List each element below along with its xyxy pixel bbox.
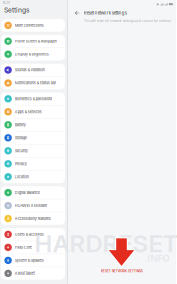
button[interactable]: System & updates	[1, 254, 65, 267]
staticText: .INFO	[144, 253, 169, 264]
staticText: Sounds & vibration	[15, 68, 45, 72]
staticText: HARDRESET	[34, 229, 177, 258]
button[interactable]: Biometrics & password	[1, 92, 65, 105]
staticText: Storage	[15, 135, 27, 140]
button[interactable]: HMS Core	[1, 241, 65, 254]
button[interactable]: Back	[68, 9, 84, 17]
staticText: Accessibility features	[15, 216, 51, 221]
staticText: Security	[15, 148, 28, 153]
staticText: Home screen & wallpaper	[15, 39, 57, 43]
staticText: Digital Balance	[15, 190, 40, 195]
button[interactable]: Home screen & wallpaper	[1, 35, 65, 47]
button[interactable]: More connections	[1, 19, 65, 32]
staticText: HUAWEI Assistant	[15, 203, 47, 208]
staticText: Settings	[4, 6, 30, 14]
staticText: Notifications & status bar	[15, 81, 56, 85]
staticText: Users & accounts	[15, 232, 44, 237]
button[interactable]: Apps & services	[1, 105, 65, 118]
staticText: This will reset all network settings and…	[84, 19, 172, 23]
staticText: About tablet	[15, 271, 35, 276]
staticText: Apps & services	[15, 109, 42, 114]
staticText: Privacy	[15, 161, 27, 166]
staticText: Reset network settings	[84, 10, 127, 16]
button[interactable]: Storage	[1, 131, 65, 144]
button[interactable]: Digital Balance	[1, 186, 65, 199]
button[interactable]: Sounds & vibration	[1, 64, 65, 76]
button[interactable]: RESET NETWORK SETTINGS	[68, 267, 175, 275]
staticText: Location	[15, 174, 29, 179]
button[interactable]: Users & accounts	[1, 228, 65, 241]
button[interactable]: Display & brightness	[1, 48, 65, 60]
staticText: HMS Core	[15, 245, 32, 250]
staticText: RESET NETWORK SETTINGS	[101, 269, 143, 273]
staticText: 10:31	[2, 1, 9, 5]
button[interactable]: HUAWEI Assistant	[1, 199, 65, 212]
staticText: Battery	[15, 122, 26, 127]
staticText: Biometrics & password	[15, 96, 52, 101]
staticText: More connections	[15, 23, 44, 28]
button[interactable]: Privacy	[1, 157, 65, 170]
button[interactable]: Battery	[1, 118, 65, 131]
staticText: System & updates	[15, 258, 44, 263]
button[interactable]: Security	[1, 144, 65, 157]
staticText: Display & brightness	[15, 52, 49, 56]
button[interactable]: Notifications & status bar	[1, 77, 65, 89]
button[interactable]: Location	[1, 170, 65, 183]
button[interactable]: About tablet	[1, 267, 65, 280]
button[interactable]: Accessibility features	[1, 212, 65, 225]
